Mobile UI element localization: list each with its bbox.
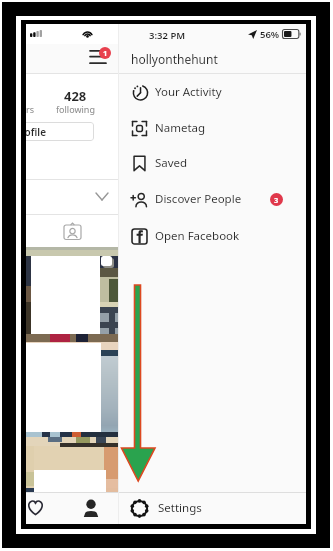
button[interactable]: Profile <box>72 492 118 524</box>
staticText: Edit Profile <box>26 125 47 139</box>
staticText: Saved <box>155 155 188 171</box>
staticText: 428 <box>64 87 87 105</box>
staticText: following <box>56 103 95 115</box>
button[interactable]: Discover People <box>119 181 306 217</box>
staticText: Discover People <box>155 191 242 207</box>
button[interactable]: Open Facebook <box>119 218 306 254</box>
button[interactable]: Menu <box>90 50 106 64</box>
staticText: 56% <box>260 28 280 41</box>
staticText: 3:32 PM <box>149 29 186 42</box>
staticText: Your Activity <box>155 84 222 100</box>
button[interactable]: Your Activity <box>119 74 306 110</box>
staticText: 1 <box>103 48 108 58</box>
staticText: rs <box>26 103 35 115</box>
staticText: Open Facebook <box>155 228 240 244</box>
staticText: 3 <box>274 195 279 205</box>
button[interactable]: Edit Profile <box>26 122 94 141</box>
staticText: Nametag <box>155 120 206 136</box>
button[interactable]: Settings <box>119 492 306 524</box>
staticText: Settings <box>158 500 202 516</box>
button[interactable]: Nametag <box>119 110 306 146</box>
button[interactable]: Activity <box>26 492 72 524</box>
staticText: hollyonthehunt <box>131 51 218 67</box>
button[interactable]: Saved <box>119 145 306 181</box>
